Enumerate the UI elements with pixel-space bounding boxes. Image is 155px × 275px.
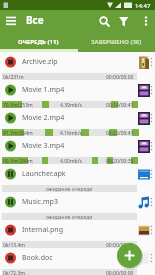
staticText: ожидание очереди [46, 214, 93, 221]
button[interactable]: Movie 3.mp4 [0, 136, 155, 164]
button[interactable]: Internal.png [0, 220, 155, 248]
staticText: 4.00mb/s [60, 158, 82, 165]
button[interactable]: Book.doc [0, 248, 155, 275]
button[interactable]: Movie 1.mp4 [0, 80, 155, 108]
staticText: ЗАВЕРШЕНО (36) [91, 38, 142, 46]
staticText: 4.16mb/s [60, 130, 82, 137]
staticText: 00:14/00:41 [106, 102, 134, 109]
staticText: Internal.png [22, 225, 63, 235]
staticText: 4.39mb/s [60, 102, 82, 109]
button[interactable]: Launcher.apk [0, 164, 155, 192]
button[interactable] [139, 14, 153, 29]
staticText: Book.doc [22, 253, 53, 263]
staticText: ОЧЕРЕДЬ (11) [18, 38, 59, 46]
button[interactable] [97, 14, 112, 29]
staticText: Movie 2.mp4 [22, 113, 65, 123]
staticText: 0k/231m [3, 74, 24, 81]
staticText: 00:00/00:00 [106, 74, 134, 81]
staticText: 00:20/00:39 [106, 158, 134, 165]
button[interactable]: ОЧЕРЕДЬ (11) [0, 31, 77, 52]
staticText: 91.7m/264m [3, 130, 33, 137]
staticText: Movie 1.mp4 [22, 85, 65, 95]
staticText: 00:00/00:00 [106, 242, 134, 249]
button[interactable] [116, 14, 131, 29]
staticText: 90.3m/294m [3, 158, 33, 165]
staticText: ожидание очереди [46, 186, 93, 193]
staticText: 70.3m/253m [3, 102, 33, 109]
button[interactable] [2, 15, 20, 29]
staticText: 00:00/00:00 [106, 270, 134, 275]
staticText: 14:47 [135, 2, 151, 10]
button[interactable]: ЗАВЕРШЕНО (36) [77, 31, 155, 52]
staticText: 0k/13.4m [3, 242, 25, 249]
button[interactable]: Music.mp3 [0, 192, 155, 220]
staticText: Launcher.apk [22, 169, 66, 179]
button[interactable]: Movie 2.mp4 [0, 108, 155, 136]
button[interactable] [117, 243, 142, 268]
staticText: 0k/72.3m [3, 270, 25, 275]
staticText: Movie 3.mp4 [22, 141, 65, 151]
staticText: 00:22/00:41 [106, 130, 134, 137]
staticText: Все [26, 13, 44, 27]
staticText: Music.mp3 [22, 197, 58, 207]
staticText: Archive.zip [22, 57, 58, 67]
button[interactable]: Archive.zip [0, 52, 155, 80]
